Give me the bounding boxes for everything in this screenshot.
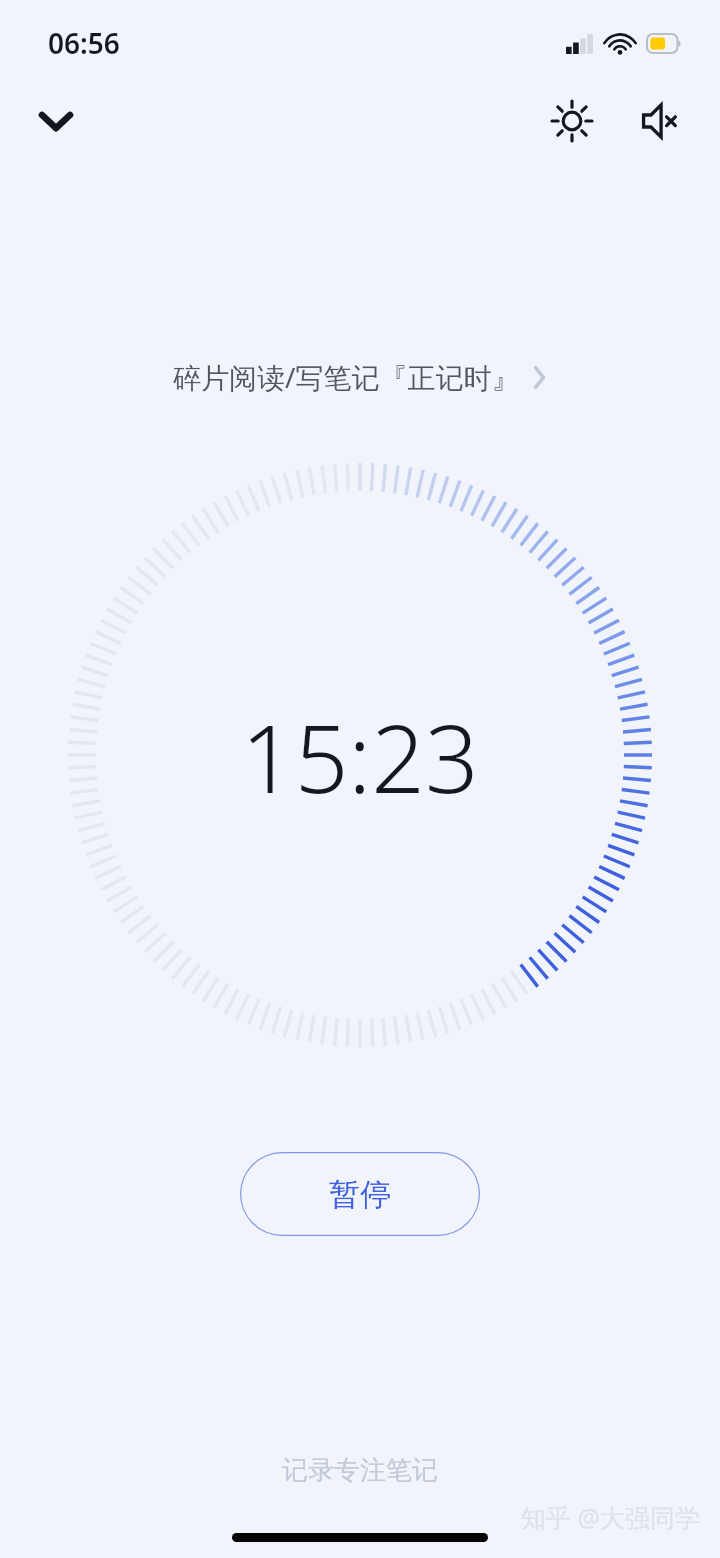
button[interactable]: 碎片阅读/写笔记『正记时』 — [159, 352, 561, 402]
button[interactable]: Mute — [630, 89, 694, 153]
button[interactable]: Collapse — [26, 91, 86, 151]
staticText: 碎片阅读/写笔记『正记时』 — [173, 358, 520, 396]
button[interactable]: 记录专注笔记 — [262, 1450, 458, 1491]
staticText: 暂停 — [329, 1175, 391, 1214]
staticText: 知乎 @大强同学 — [521, 1500, 700, 1534]
button[interactable]: 暂停 — [240, 1152, 480, 1236]
button[interactable]: Brightness — [540, 89, 604, 153]
staticText: 06:56 — [48, 24, 120, 62]
staticText: 15:23 — [241, 693, 479, 821]
